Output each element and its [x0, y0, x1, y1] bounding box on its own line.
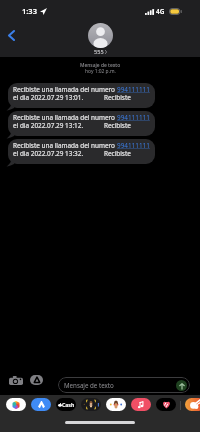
button[interactable]: App [106, 398, 126, 411]
staticText: Recibiste [104, 149, 131, 158]
staticText: 555 [94, 48, 104, 56]
button[interactable]: App [185, 398, 200, 411]
staticText: el dia 2022.07.29 13:01. [13, 93, 84, 102]
button[interactable]: Back [1, 25, 21, 45]
staticText: 1:33 [22, 6, 37, 16]
staticText: 994111111 [117, 85, 150, 94]
button[interactable]: Apps [30, 375, 43, 385]
staticText: 994111111 [117, 141, 150, 150]
button[interactable]: App [56, 398, 76, 411]
button[interactable]: Send [176, 380, 187, 391]
staticText: hoy 1:02 p.m. [85, 68, 116, 75]
staticText: Recibiste una llamada del numero [13, 141, 117, 150]
staticText: 4G [156, 7, 165, 16]
button[interactable]: App [81, 398, 101, 411]
staticText: Recibiste [104, 93, 131, 102]
button[interactable]: Mensaje de texto [58, 377, 190, 393]
staticText: el dia 2022.07.29 13:32. [13, 149, 84, 158]
button[interactable]: Recibiste una llamada del numero [8, 111, 155, 136]
button[interactable]: Camera [8, 374, 24, 386]
button[interactable]: App [156, 398, 176, 411]
button[interactable]: App [6, 398, 26, 411]
button[interactable]: App [31, 398, 51, 411]
staticText: Recibiste una llamada del numero [13, 85, 117, 94]
staticText: Recibiste [104, 121, 131, 130]
staticText: Mensaje de texto [64, 381, 114, 389]
staticText: Recibiste una llamada del numero [13, 113, 117, 122]
button[interactable]: Recibiste una llamada del numero [8, 139, 155, 164]
button[interactable]: Recibiste una llamada del numero [8, 83, 155, 108]
button[interactable]: App [131, 398, 151, 411]
staticText: Cash [62, 401, 75, 408]
button[interactable]: 555 [88, 23, 113, 56]
staticText: el dia 2022.07.29 13:12. [13, 121, 84, 130]
staticText: 994111111 [117, 113, 150, 122]
staticText: Mensaje de texto [80, 62, 121, 69]
